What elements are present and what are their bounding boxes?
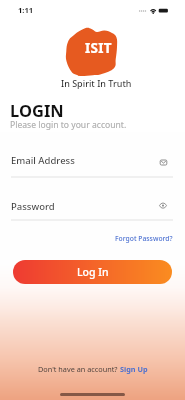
staticText: Don't have an account? bbox=[38, 364, 120, 374]
button[interactable]: Show password bbox=[156, 200, 170, 211]
staticText: Email Address bbox=[11, 154, 75, 167]
button[interactable]: Email bbox=[157, 157, 170, 168]
button[interactable]: Sign Up bbox=[120, 364, 148, 374]
button[interactable]: Forgot Password? bbox=[115, 234, 173, 243]
staticText: Please login to your account. bbox=[10, 119, 127, 131]
staticText: LOGIN bbox=[10, 99, 64, 121]
staticText: 1:11 bbox=[18, 5, 34, 15]
staticText: ISIT bbox=[85, 39, 112, 57]
staticText: Log In bbox=[77, 265, 109, 279]
staticText: In Spirit In Truth bbox=[61, 77, 132, 89]
button[interactable]: Log In bbox=[13, 260, 172, 284]
staticText: Password bbox=[11, 200, 55, 213]
